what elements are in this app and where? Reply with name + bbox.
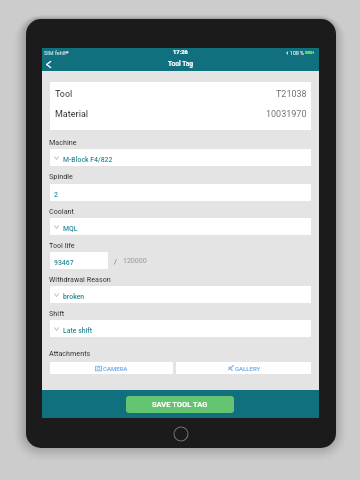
staticText: Machine — [49, 138, 77, 146]
staticText: 10031970 — [266, 109, 307, 120]
button[interactable]: GALLERY — [176, 362, 311, 374]
staticText: 120000 — [123, 257, 147, 265]
button[interactable]: Back — [42, 57, 56, 70]
staticText: MQL — [63, 225, 78, 233]
staticText: broken — [63, 293, 85, 301]
staticText: 2 — [54, 191, 58, 199]
staticText: Tool Tag — [168, 60, 194, 68]
staticText: 100 % — [290, 50, 304, 56]
staticText: CAMERA — [103, 365, 128, 372]
button[interactable]: broken — [50, 286, 311, 303]
staticText: M-Block F4/822 — [63, 156, 113, 164]
button[interactable]: 93467 — [50, 252, 108, 269]
staticText: / — [114, 257, 117, 265]
staticText: Tool life — [49, 241, 75, 249]
button[interactable]: CAMERA — [50, 362, 173, 374]
staticText: SIM fehlt — [44, 50, 66, 56]
staticText: GALLERY — [235, 365, 261, 372]
staticText: Coolant — [49, 207, 74, 215]
staticText: Late shift — [63, 327, 92, 335]
staticText: Shift — [49, 309, 65, 317]
button[interactable]: M-Block F4/822 — [50, 149, 311, 166]
staticText: SAVE TOOL TAG — [152, 400, 208, 409]
staticText: Tool — [55, 89, 73, 100]
button[interactable]: SAVE TOOL TAG — [126, 396, 234, 413]
button[interactable]: 2 — [50, 184, 311, 201]
staticText: Withdrawal Reason — [49, 275, 111, 283]
staticText: Material — [55, 109, 89, 120]
button[interactable]: MQL — [50, 218, 311, 235]
staticText: 17:26 — [173, 49, 188, 56]
staticText: Attachments — [49, 349, 91, 357]
staticText: T21038 — [276, 89, 307, 100]
staticText: Spindle — [49, 172, 73, 180]
staticText: 93467 — [54, 259, 74, 267]
button[interactable]: Late shift — [50, 320, 311, 337]
